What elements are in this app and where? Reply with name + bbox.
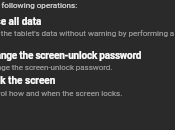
staticText: Control how and when the screen locks. bbox=[0, 89, 123, 98]
button[interactable] bbox=[0, 13, 175, 40]
staticText: Lock the screen bbox=[0, 75, 56, 87]
staticText: Erase the tablet's data without warning … bbox=[0, 29, 154, 38]
button[interactable] bbox=[0, 48, 175, 74]
button[interactable] bbox=[0, 73, 175, 99]
staticText: Change the screen-unlock password bbox=[0, 50, 142, 62]
staticText: Change the screen-unlock password. bbox=[0, 63, 113, 72]
staticText: Erase all data bbox=[0, 16, 42, 28]
staticText: the following operations: bbox=[0, 1, 78, 10]
